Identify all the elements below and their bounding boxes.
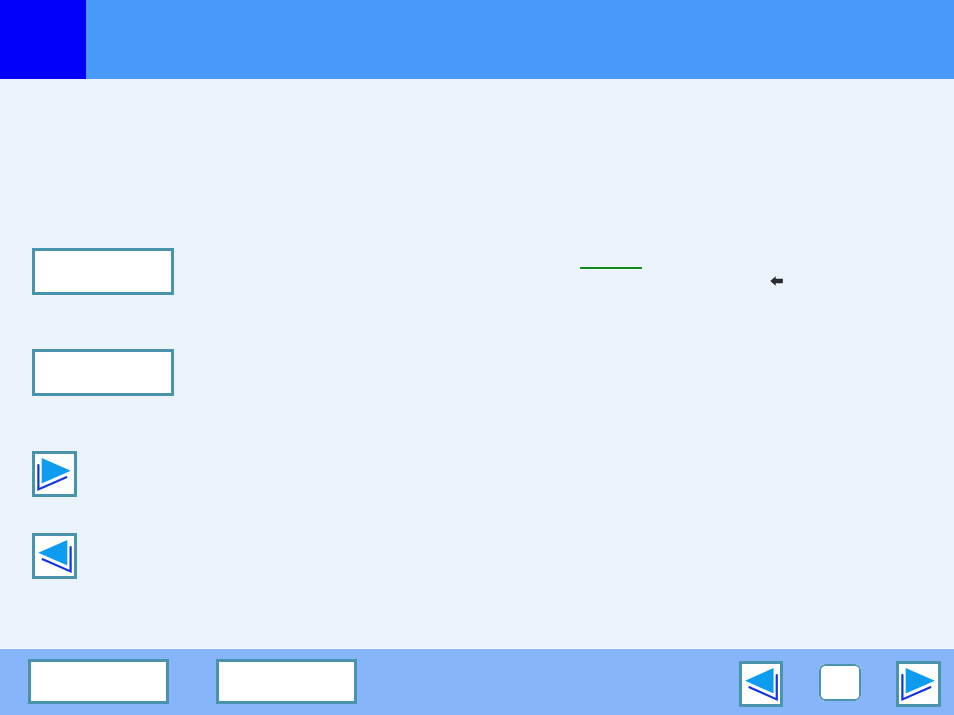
button[interactable]: Back (739, 661, 783, 707)
button[interactable]: Play (896, 661, 941, 707)
button[interactable] (32, 349, 174, 396)
button[interactable] (28, 659, 169, 704)
button[interactable]: Play (32, 451, 77, 497)
button[interactable] (32, 248, 174, 295)
button[interactable]: Stop (819, 664, 861, 701)
button[interactable] (216, 659, 357, 704)
other: Back arrow (770, 276, 783, 286)
button[interactable]: Back (32, 533, 77, 579)
